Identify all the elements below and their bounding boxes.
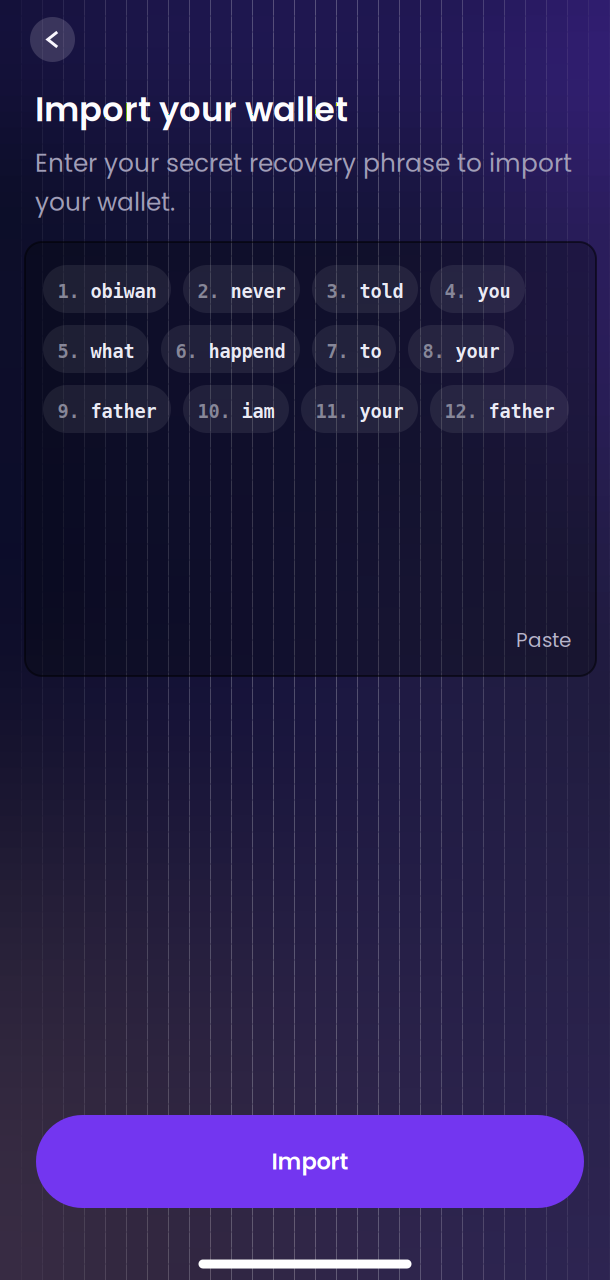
staticText: Paste: [516, 626, 571, 654]
staticText: 8.: [422, 341, 444, 362]
staticText: iam: [230, 401, 274, 422]
staticText: 7.: [326, 341, 348, 362]
button[interactable]: 5.: [43, 325, 149, 373]
staticText: your: [444, 341, 499, 362]
staticText: never: [219, 281, 285, 302]
staticText: 2.: [197, 281, 219, 302]
staticText: 4.: [444, 281, 466, 302]
staticText: happend: [197, 341, 285, 362]
staticText: to: [348, 341, 381, 362]
button[interactable]: 6.: [161, 325, 300, 373]
button[interactable]: 11.: [301, 385, 418, 433]
button[interactable]: 2.: [183, 265, 300, 313]
staticText: 12.: [444, 401, 477, 422]
staticText: Import: [271, 1146, 348, 1177]
staticText: obiwan: [79, 281, 156, 302]
button[interactable]: 1.: [43, 265, 171, 313]
button[interactable]: 12.: [430, 385, 569, 433]
staticText: Import your wallet: [35, 86, 348, 133]
button[interactable]: Import: [36, 1115, 584, 1208]
button[interactable]: Paste: [501, 623, 571, 657]
staticText: told: [348, 281, 403, 302]
staticText: your wallet.: [35, 185, 175, 219]
button[interactable]: 8.: [408, 325, 514, 373]
button[interactable]: 10.: [183, 385, 289, 433]
staticText: 3.: [326, 281, 348, 302]
button[interactable]: 4.: [430, 265, 525, 313]
button[interactable]: 9.: [43, 385, 171, 433]
button[interactable]: 3.: [312, 265, 418, 313]
button[interactable]: Back: [30, 17, 75, 62]
staticText: 1.: [57, 281, 79, 302]
button[interactable]: 7.: [312, 325, 396, 373]
staticText: father: [477, 401, 554, 422]
staticText: 9.: [57, 401, 79, 422]
staticText: father: [79, 401, 156, 422]
staticText: 6.: [175, 341, 197, 362]
staticText: your: [348, 401, 403, 422]
staticText: Enter your secret recovery phrase to imp…: [35, 146, 572, 180]
staticText: 5.: [57, 341, 79, 362]
staticText: 10.: [197, 401, 230, 422]
staticText: you: [466, 281, 510, 302]
staticText: what: [79, 341, 134, 362]
staticText: 11.: [315, 401, 348, 422]
